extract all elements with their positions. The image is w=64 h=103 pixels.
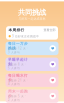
button[interactable]: 每日喝水打卡 xyxy=(0,73,64,87)
staticText: 每日喝水打卡 xyxy=(8,73,28,82)
staticText: 共同挑战 xyxy=(18,8,46,17)
staticText: 查看全部 xyxy=(43,28,55,32)
button[interactable]: 早睡早起计划 xyxy=(0,58,64,71)
staticText: 每日一万步挑战 xyxy=(8,41,28,50)
staticText: 已坚持 21 天 · 4 人参与 xyxy=(8,79,28,86)
staticText: 已坚持 12 天 · 3 人参与 xyxy=(8,47,28,54)
button[interactable]: 周末一起跑步 xyxy=(0,89,64,103)
staticText: 已坚持 5 天 · 2 人参与 xyxy=(8,94,26,102)
staticText: 与好友一起达成目标 xyxy=(18,17,45,21)
staticText: 本周排行 xyxy=(9,28,25,32)
button[interactable]: 本周排行 xyxy=(0,26,64,40)
staticText: 早睡早起计划 xyxy=(8,57,28,66)
staticText: 周末一起跑步 xyxy=(8,89,28,98)
staticText: 已坚持 8 天 · 5 人参与 xyxy=(8,63,26,70)
button[interactable]: 每日一万步挑战 xyxy=(0,42,64,55)
staticText: 3 位好友正在挑战中 xyxy=(12,34,39,38)
